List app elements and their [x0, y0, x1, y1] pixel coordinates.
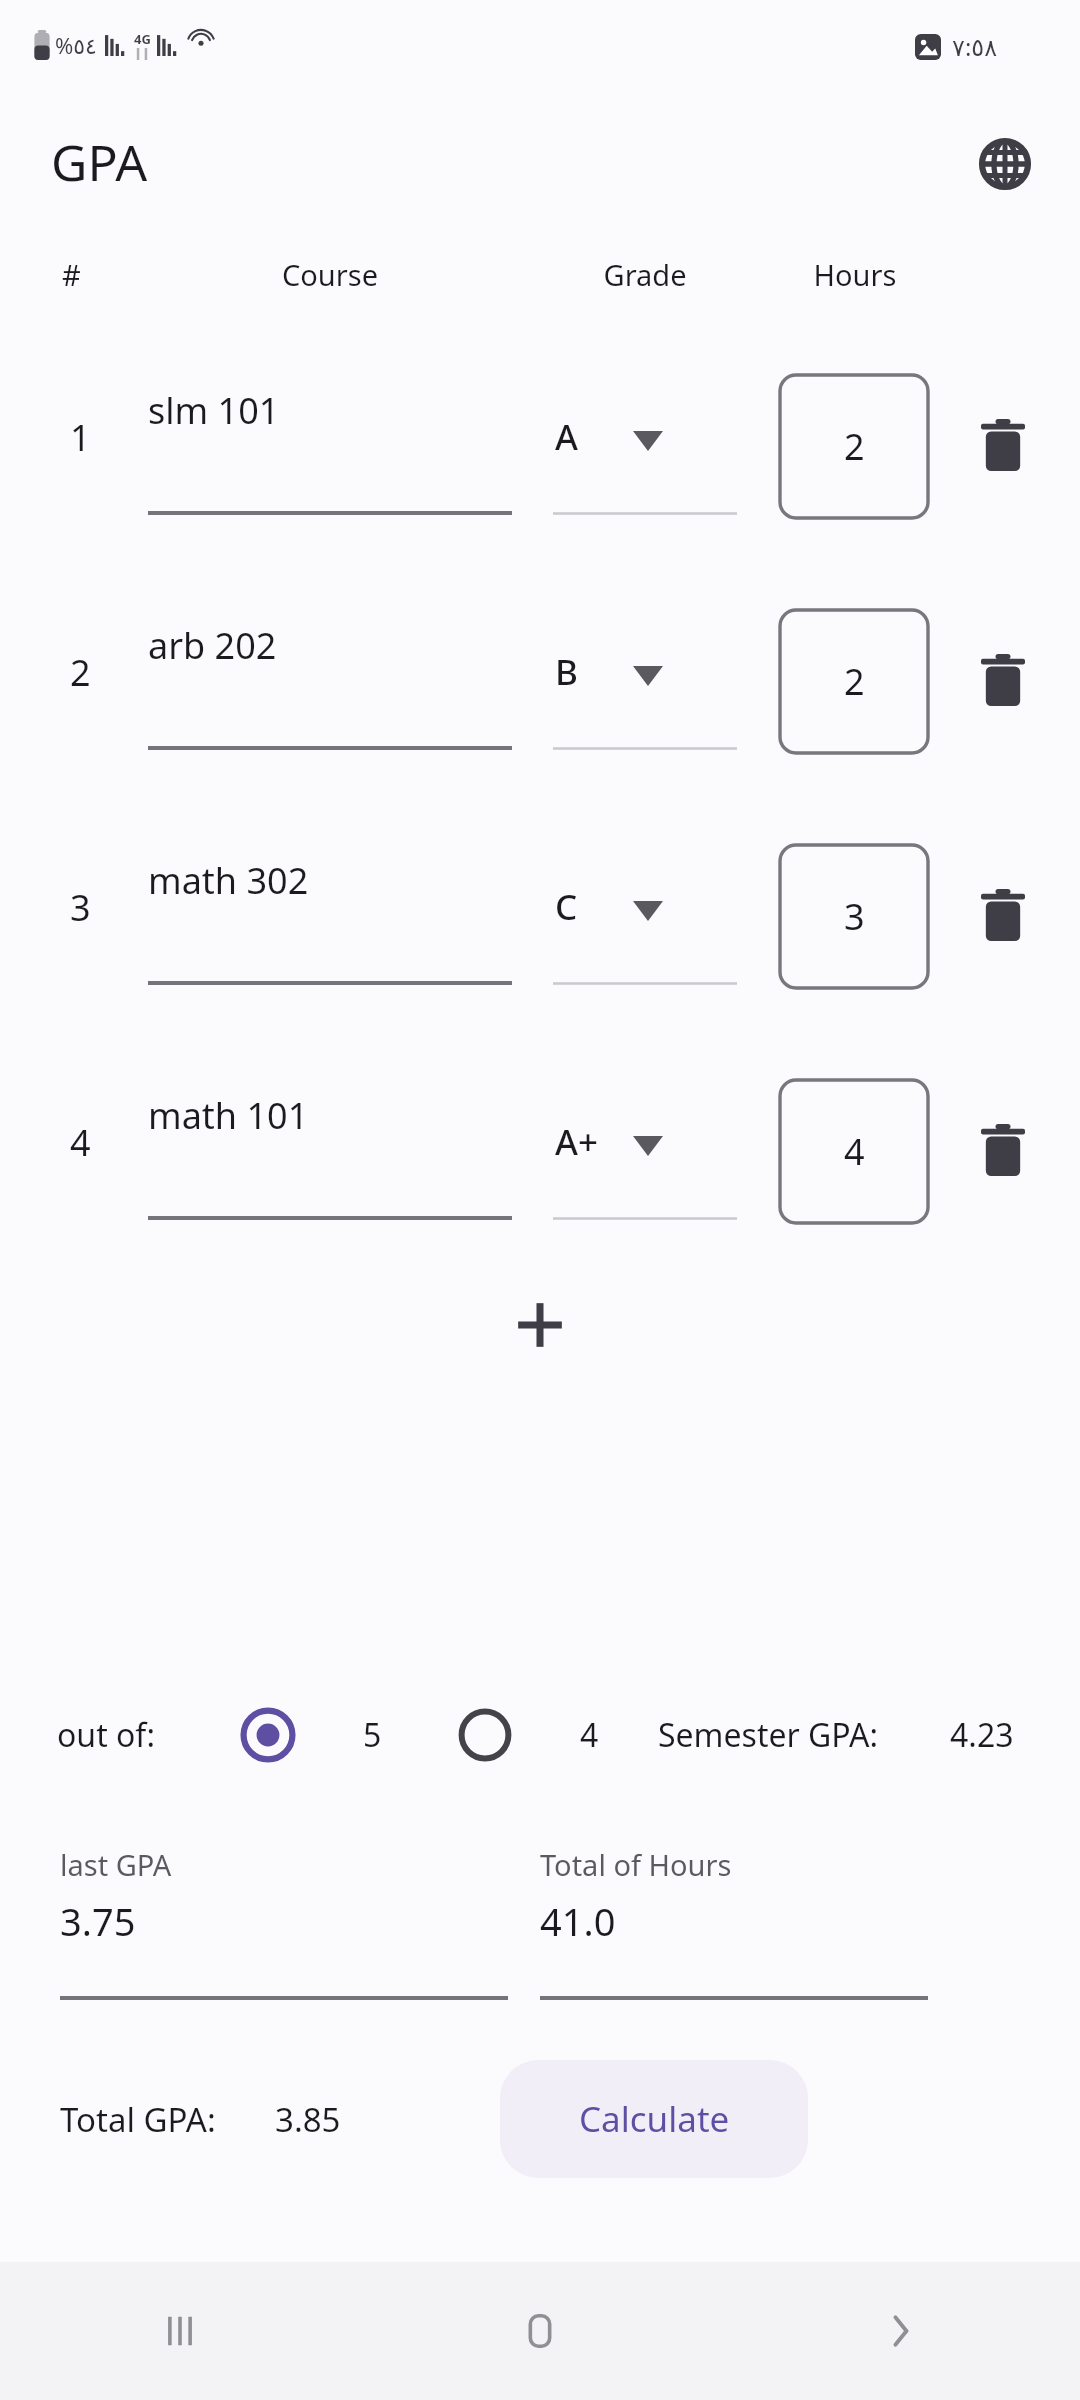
staticText: math 302 [148, 856, 309, 905]
button[interactable]: A+ [553, 1092, 737, 1220]
button[interactable]: Back [720, 2262, 1080, 2400]
staticText: %٥٤ [55, 30, 97, 60]
staticText: A [555, 413, 578, 461]
button[interactable]: A [553, 387, 737, 515]
button[interactable]: Delete course 3 [955, 867, 1051, 963]
staticText: 5 [363, 1713, 382, 1757]
staticText: Semester GPA: [658, 1713, 879, 1757]
button[interactable]: Home [360, 2262, 720, 2400]
staticText: Total of Hours [540, 1845, 732, 1884]
staticText: 4.23 [950, 1713, 1014, 1757]
staticText: last GPA [60, 1845, 172, 1884]
button[interactable] [220, 1687, 316, 1783]
staticText: Hours [760, 255, 950, 294]
staticText: 2 [70, 648, 91, 697]
button[interactable]: slm 101 [148, 372, 512, 515]
staticText: Calculate [579, 2095, 730, 2143]
button[interactable]: Delete course 1 [955, 397, 1051, 493]
button[interactable]: Total of Hours [540, 1845, 928, 2000]
button[interactable]: math 302 [148, 842, 512, 985]
staticText: slm 101 [148, 386, 280, 435]
staticText: B [555, 648, 578, 696]
staticText: 4G [134, 30, 151, 48]
staticText: Grade [550, 255, 740, 294]
button[interactable]: Change language [957, 116, 1053, 212]
button[interactable]: 4 [780, 1080, 928, 1223]
button[interactable]: arb 202 [148, 607, 512, 750]
staticText: 3.75 [60, 1895, 136, 1947]
button[interactable] [437, 1687, 533, 1783]
staticText: GPA [51, 128, 148, 196]
staticText: A+ [555, 1118, 598, 1166]
staticText: 4 [580, 1713, 599, 1757]
button[interactable]: Delete course 4 [955, 1102, 1051, 1198]
staticText: out of: [57, 1713, 155, 1757]
button[interactable]: last GPA [60, 1845, 508, 2000]
staticText: # [62, 255, 81, 294]
staticText: 1 [70, 413, 91, 462]
staticText: 4 [844, 1127, 865, 1176]
staticText: arb 202 [148, 621, 277, 670]
button[interactable]: 2 [780, 375, 928, 518]
staticText: 2 [844, 657, 865, 706]
button[interactable]: 2 [780, 610, 928, 753]
button[interactable]: Add course [492, 1277, 588, 1373]
staticText: 4 [70, 1118, 91, 1167]
staticText: math 101 [148, 1091, 309, 1140]
staticText: 3 [70, 883, 91, 932]
button[interactable]: 3 [780, 845, 928, 988]
button[interactable]: Recent apps [0, 2262, 360, 2400]
staticText: Total GPA: [60, 2097, 216, 2142]
staticText: C [555, 883, 578, 931]
button[interactable]: C [553, 857, 737, 985]
staticText: ٧:٥٨ [952, 30, 998, 63]
staticText: 3.85 [275, 2097, 341, 2142]
staticText: Course [210, 255, 450, 294]
button[interactable]: Delete course 2 [955, 632, 1051, 728]
staticText: 3 [844, 892, 865, 941]
button[interactable]: B [553, 622, 737, 750]
staticText: 41.0 [540, 1895, 616, 1947]
button[interactable]: Calculate [500, 2060, 808, 2178]
button[interactable]: math 101 [148, 1077, 512, 1220]
staticText: 2 [844, 422, 865, 471]
